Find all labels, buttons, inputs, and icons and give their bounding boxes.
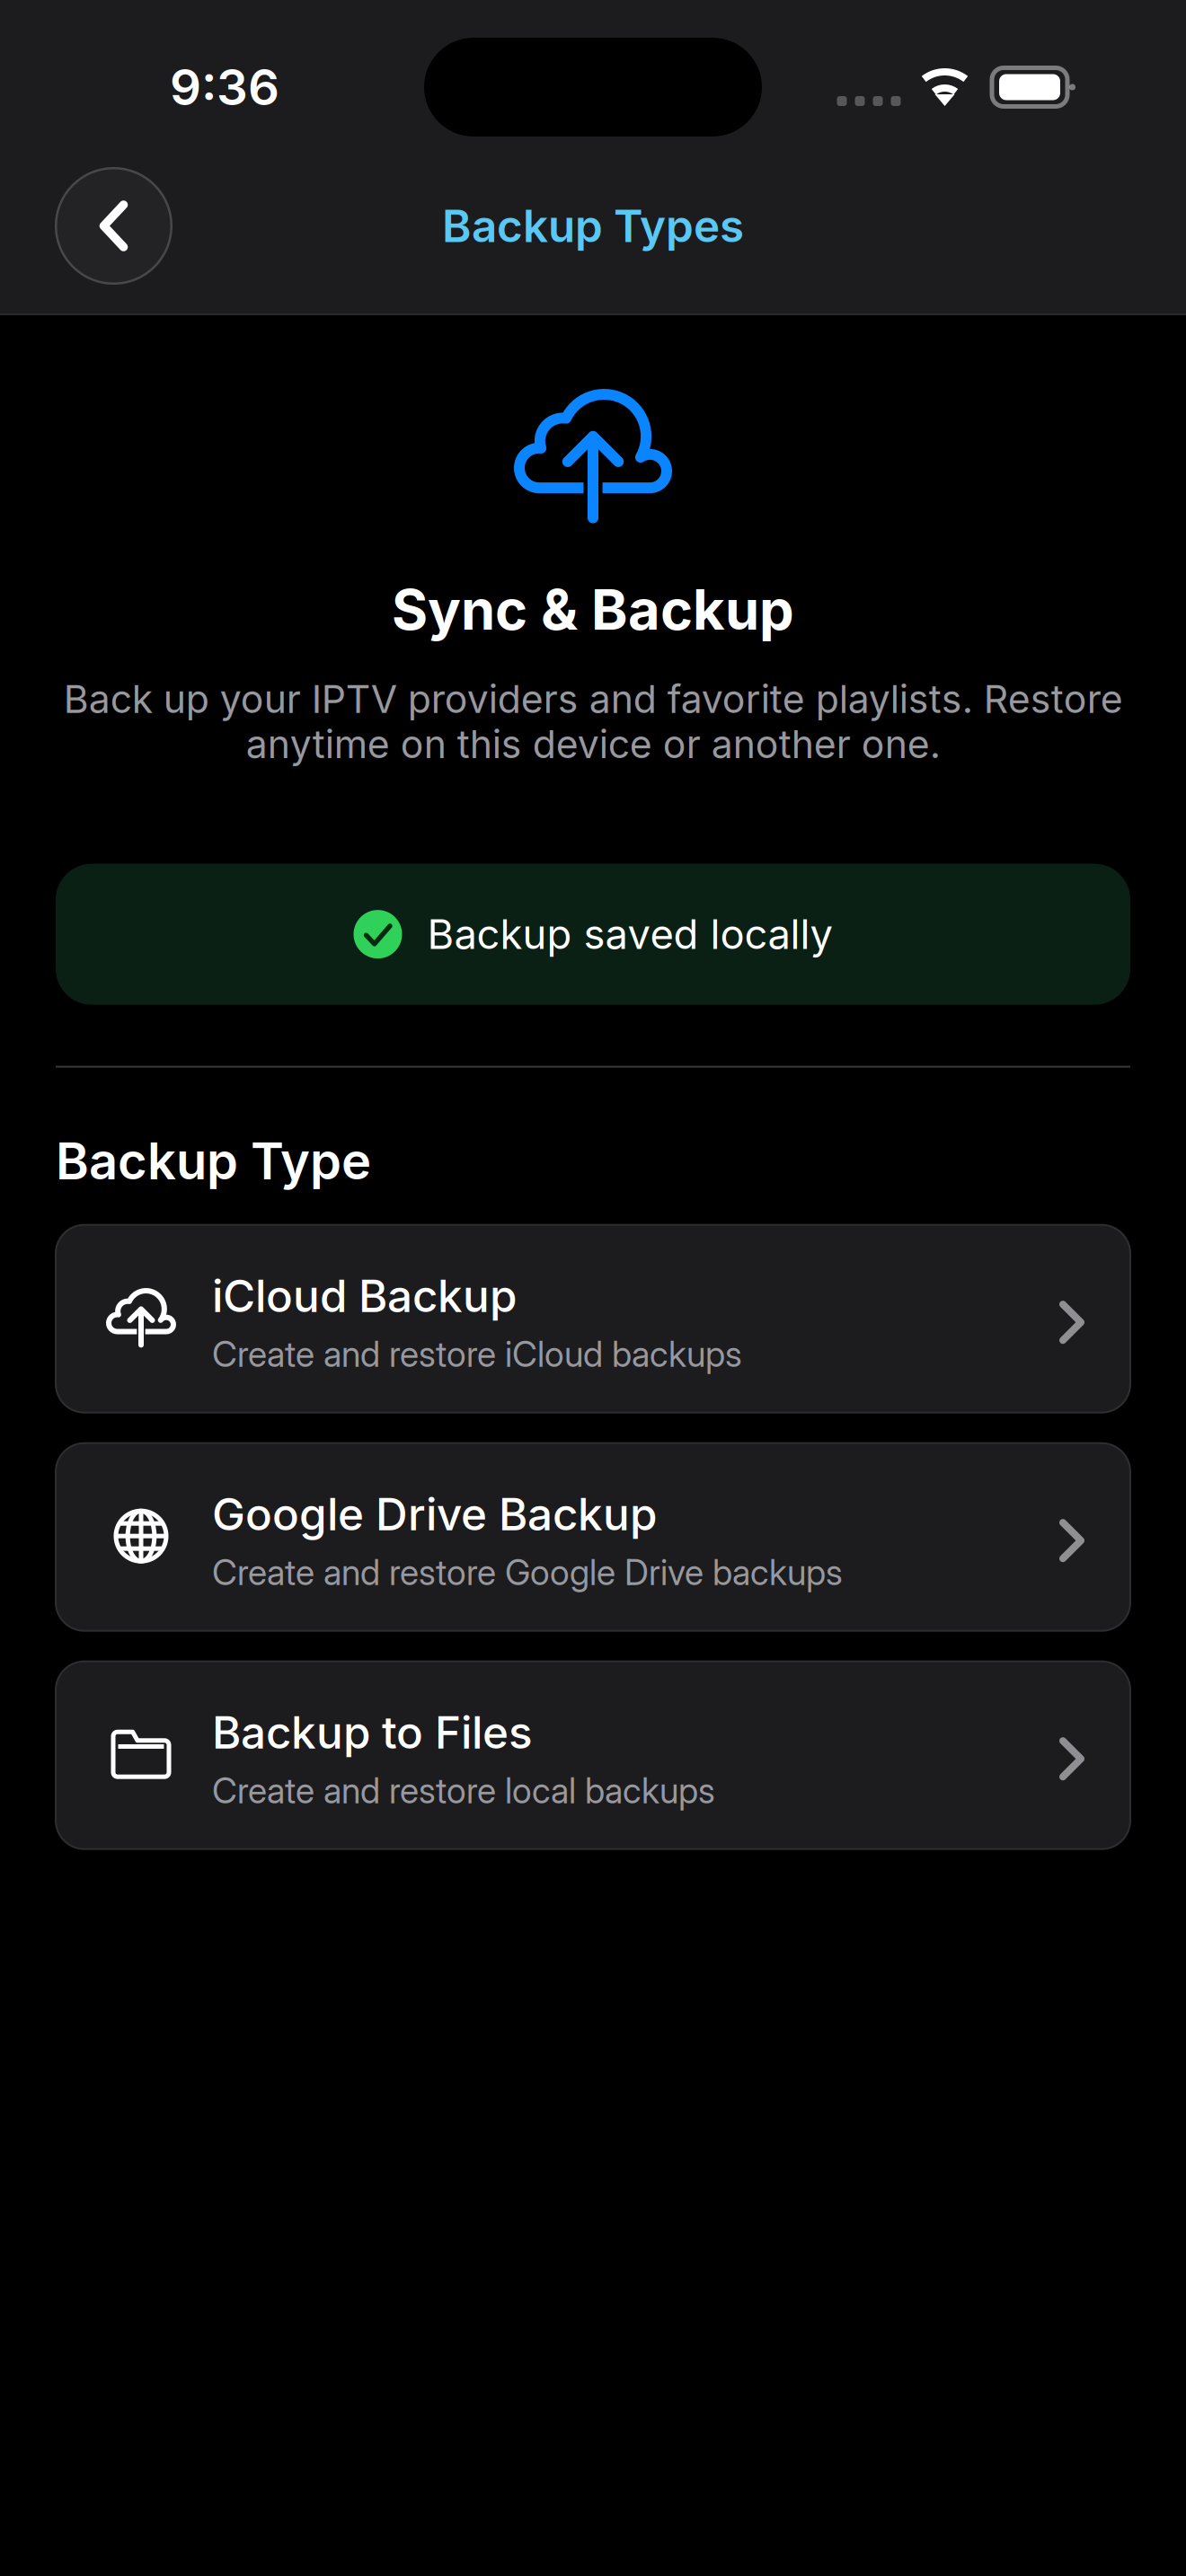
staticText: Back up your IPTV providers and favorite… <box>63 676 1123 767</box>
staticText: Create and restore iCloud backups <box>212 1334 742 1375</box>
staticText: Backup saved locally <box>427 910 832 958</box>
staticText: iCloud Backup <box>212 1270 517 1322</box>
staticText: Backup Types <box>442 200 744 252</box>
button[interactable]: Google Drive Backup <box>56 1443 1130 1631</box>
staticText: Backup to Files <box>212 1706 533 1759</box>
staticText: Create and restore local backups <box>212 1770 715 1811</box>
button[interactable]: Back <box>55 167 173 285</box>
button[interactable]: Backup to Files <box>56 1661 1130 1849</box>
button[interactable]: iCloud Backup <box>56 1225 1130 1413</box>
staticText: Sync & Backup <box>392 577 794 642</box>
staticText: 9:36 <box>170 58 279 116</box>
staticText: Create and restore Google Drive backups <box>212 1552 843 1593</box>
staticText: Google Drive Backup <box>212 1488 657 1540</box>
staticText: Backup Type <box>56 1131 371 1191</box>
